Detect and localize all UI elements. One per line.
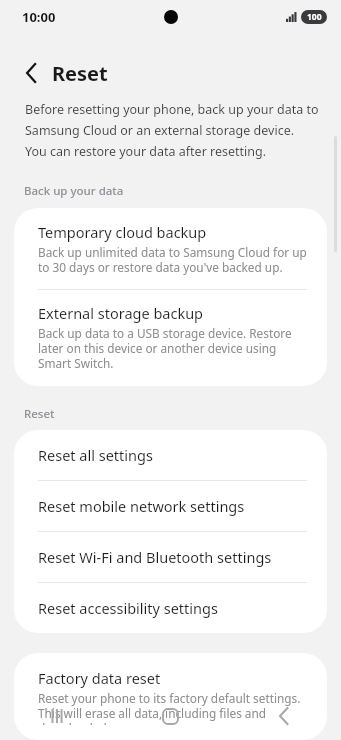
button[interactable]: Reset Wi-Fi and Bluetooth settings bbox=[14, 532, 327, 582]
staticText: Reset accessibility settings bbox=[38, 598, 218, 618]
button[interactable]: Reset accessibility settings bbox=[14, 583, 327, 633]
staticText: Reset mobile network settings bbox=[38, 496, 245, 516]
staticText: Reset all settings bbox=[38, 445, 153, 465]
staticText: Temporary cloud backup bbox=[38, 222, 207, 242]
button[interactable]: Factory data reset bbox=[14, 653, 327, 740]
button[interactable]: Back bbox=[14, 56, 48, 90]
staticText: Reset bbox=[52, 60, 108, 87]
staticText: Back up your data bbox=[24, 183, 124, 199]
button[interactable]: Temporary cloud backup bbox=[14, 208, 327, 289]
button[interactable]: External storage backup bbox=[14, 290, 327, 386]
staticText: Before resetting your phone, back up you… bbox=[25, 101, 319, 160]
button[interactable]: Back bbox=[227, 692, 341, 740]
button[interactable]: Home bbox=[113, 692, 227, 740]
staticText: 10:00 bbox=[22, 8, 56, 26]
staticText: Factory data reset bbox=[38, 668, 161, 688]
staticText: Reset your phone to its factory default … bbox=[38, 690, 307, 725]
staticText: External storage backup bbox=[38, 303, 204, 323]
staticText: Reset Wi-Fi and Bluetooth settings bbox=[38, 547, 272, 567]
button[interactable]: Recents bbox=[0, 692, 113, 740]
staticText: Back up unlimited data to Samsung Cloud … bbox=[38, 244, 307, 276]
staticText: Reset bbox=[24, 406, 55, 422]
button[interactable]: Reset all settings bbox=[14, 430, 327, 480]
staticText: Back up data to a USB storage device. Re… bbox=[38, 325, 307, 372]
staticText: 100 bbox=[307, 11, 322, 23]
button[interactable]: Reset mobile network settings bbox=[14, 481, 327, 531]
